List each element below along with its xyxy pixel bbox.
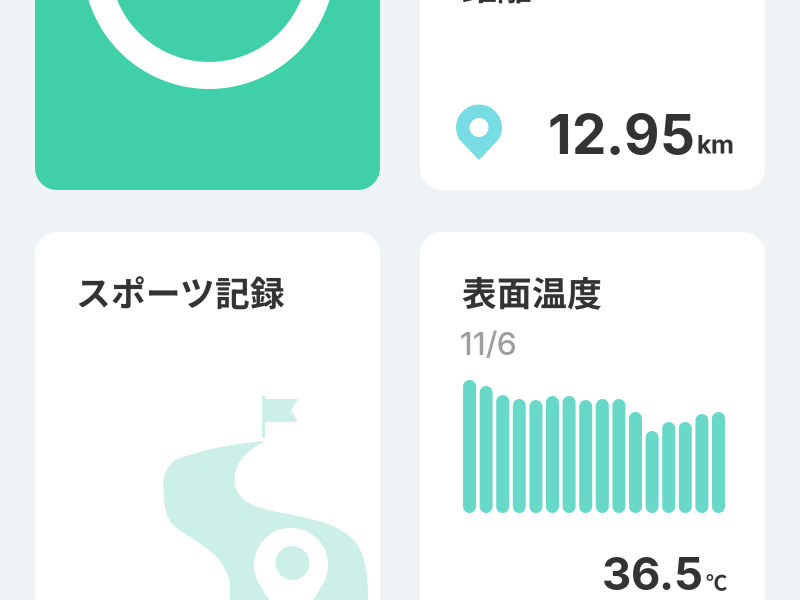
button[interactable]: 距離 <box>420 0 765 190</box>
staticText: スポーツ記録 <box>76 266 285 316</box>
button[interactable]: 表面温度 <box>420 232 765 600</box>
staticText: 11/6 <box>460 324 517 363</box>
staticText: 12.95 <box>548 101 695 167</box>
staticText: 表面温度 <box>462 266 602 316</box>
staticText: 36.5 <box>602 546 703 600</box>
staticText: 距離 <box>462 0 532 10</box>
button[interactable]: Activity ring <box>35 0 380 190</box>
staticText: ℃ <box>706 566 727 597</box>
staticText: km <box>697 129 734 160</box>
button[interactable]: スポーツ記録 <box>35 232 380 600</box>
